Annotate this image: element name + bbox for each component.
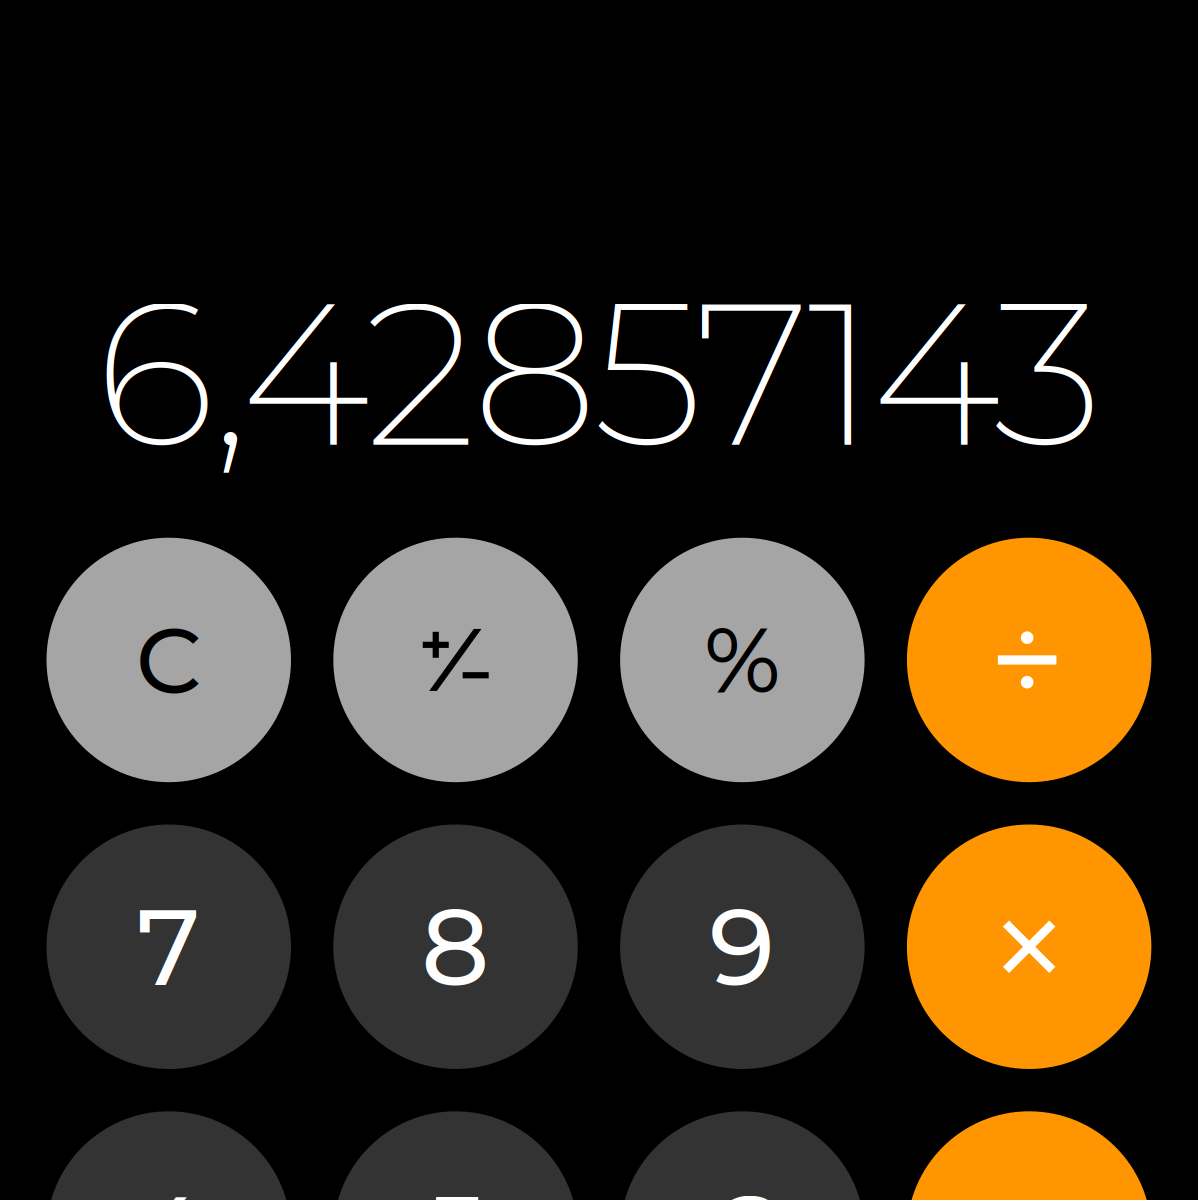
button[interactable]: 8: [333, 824, 578, 1069]
button[interactable]: Divide: [907, 538, 1151, 782]
button[interactable]: Multiply: [907, 824, 1151, 1069]
button[interactable]: Change sign: [333, 538, 578, 782]
staticText: C: [136, 604, 202, 716]
button[interactable]: 5: [333, 1111, 578, 1200]
button[interactable]: 9: [620, 824, 865, 1069]
button[interactable]: Clear: [46, 538, 291, 782]
button[interactable]: 7: [46, 824, 291, 1069]
staticText: 9: [709, 882, 775, 1012]
button[interactable]: Percent: [620, 538, 865, 782]
staticText: 7: [137, 882, 201, 1012]
staticText: 8: [421, 882, 490, 1012]
staticText: 4: [133, 1168, 204, 1200]
button[interactable]: 4: [46, 1111, 291, 1200]
staticText: %: [704, 605, 780, 715]
staticText: 6: [709, 1168, 775, 1200]
button[interactable]: Minus: [907, 1111, 1151, 1200]
staticText: 6,42857143: [95, 251, 1103, 495]
button[interactable]: 6: [620, 1111, 865, 1200]
staticText: 5: [425, 1168, 486, 1200]
